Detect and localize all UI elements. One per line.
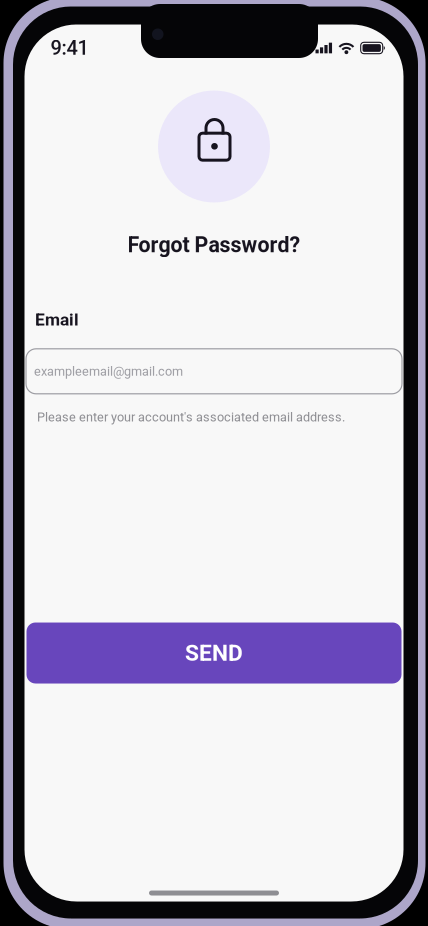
button[interactable]: SEND [26, 622, 401, 683]
staticText: SEND [185, 640, 243, 666]
staticText: Email [35, 309, 79, 330]
staticText: exampleemail@gmail.com [34, 364, 183, 379]
staticText: Forgot Password? [127, 232, 300, 257]
staticText: 9:41 [50, 36, 88, 60]
staticText: Please enter your account's associated e… [37, 410, 345, 425]
button[interactable]: exampleemail@gmail.com [26, 349, 402, 394]
